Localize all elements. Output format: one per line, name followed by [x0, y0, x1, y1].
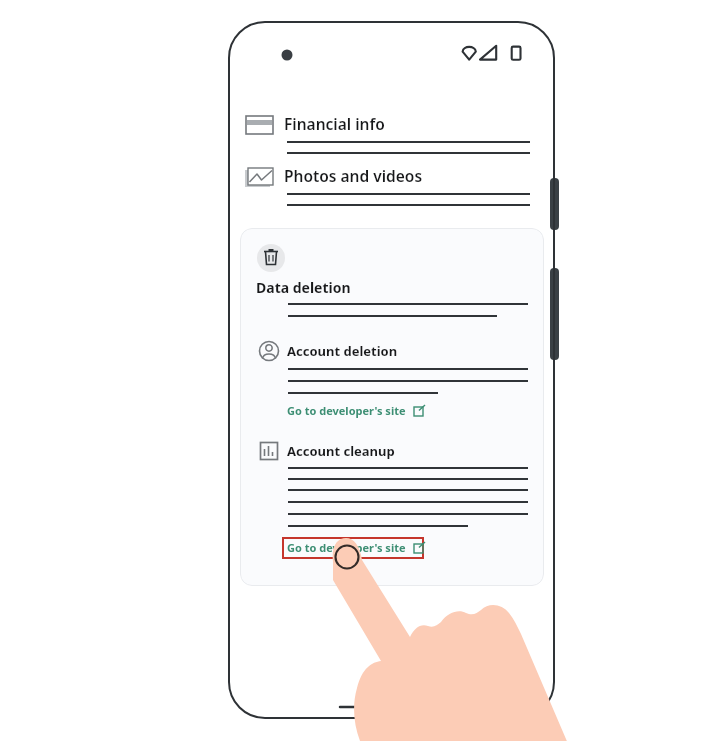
button[interactable]: Financial info	[284, 113, 385, 134]
staticText: Account cleanup	[287, 442, 395, 460]
staticText: Go to developer's site	[287, 540, 406, 555]
staticText: Go to developer's site	[287, 403, 406, 418]
staticText: Data deletion	[256, 278, 351, 297]
button[interactable]: Photos and videos	[284, 165, 423, 186]
staticText: Account deletion	[287, 342, 398, 360]
staticText: Financial info	[284, 113, 385, 134]
staticText: Photos and videos	[284, 165, 423, 186]
button[interactable]: Go to developer's site	[287, 403, 425, 418]
button[interactable]: Go to developer's site	[287, 540, 425, 555]
